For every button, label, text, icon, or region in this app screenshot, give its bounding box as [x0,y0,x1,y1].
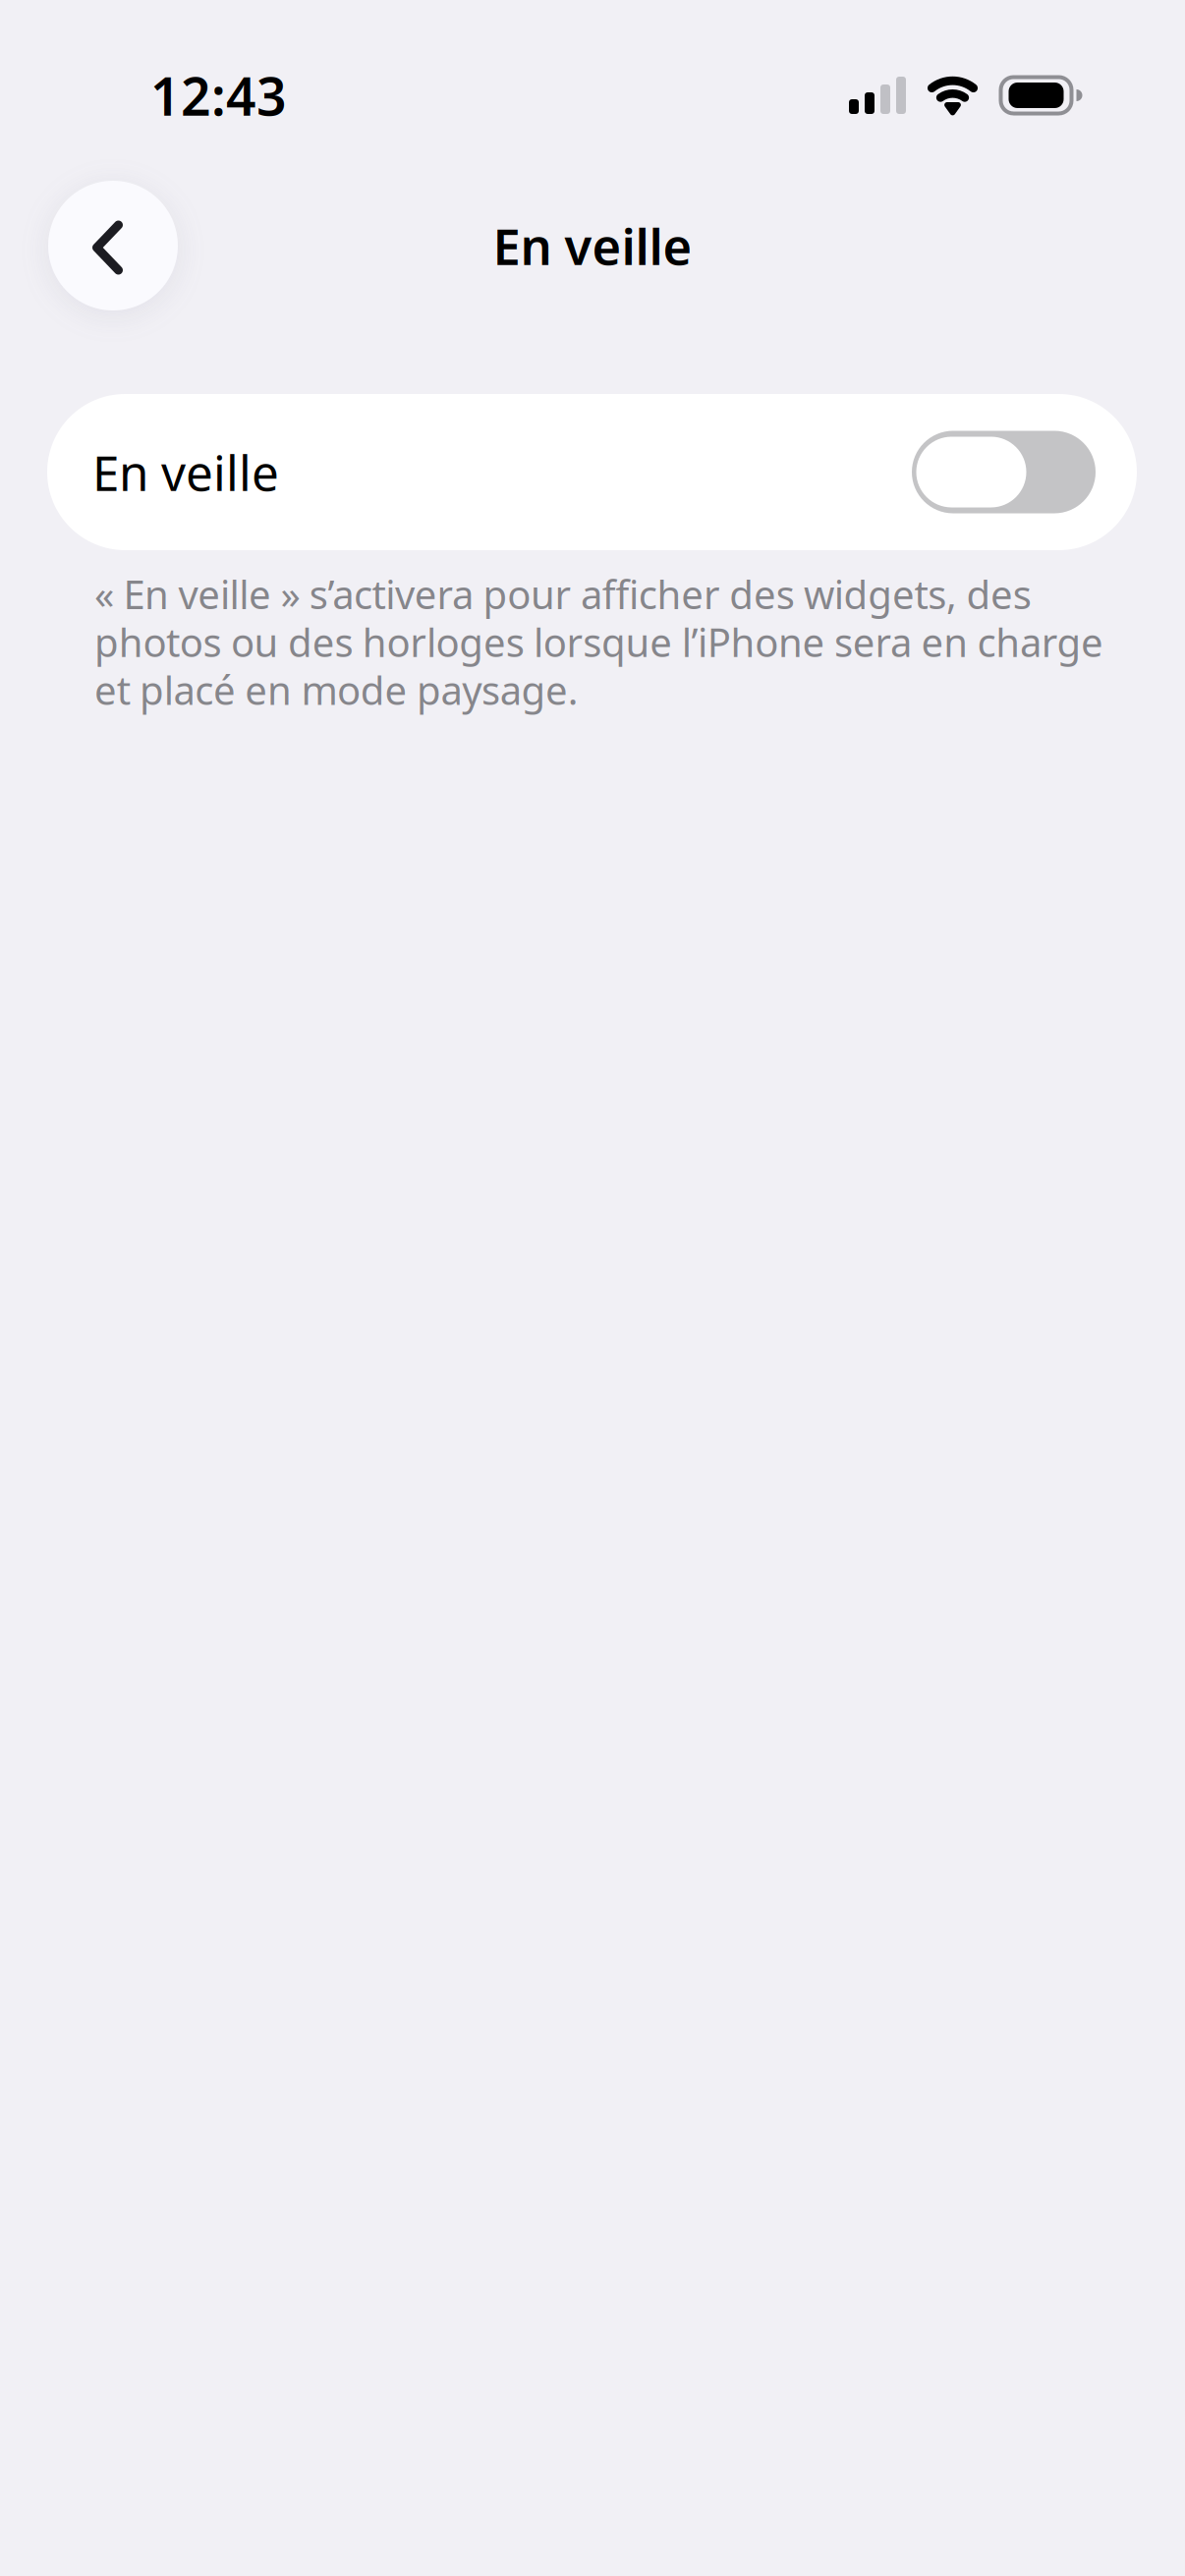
button[interactable]: Back [48,181,178,310]
staticText: « En veille » s’activera pour afficher d… [94,570,1104,714]
button[interactable]: En veille [47,394,1137,550]
staticText: 12:43 [150,61,287,130]
staticText: En veille [493,213,692,279]
staticText: En veille [92,440,279,504]
